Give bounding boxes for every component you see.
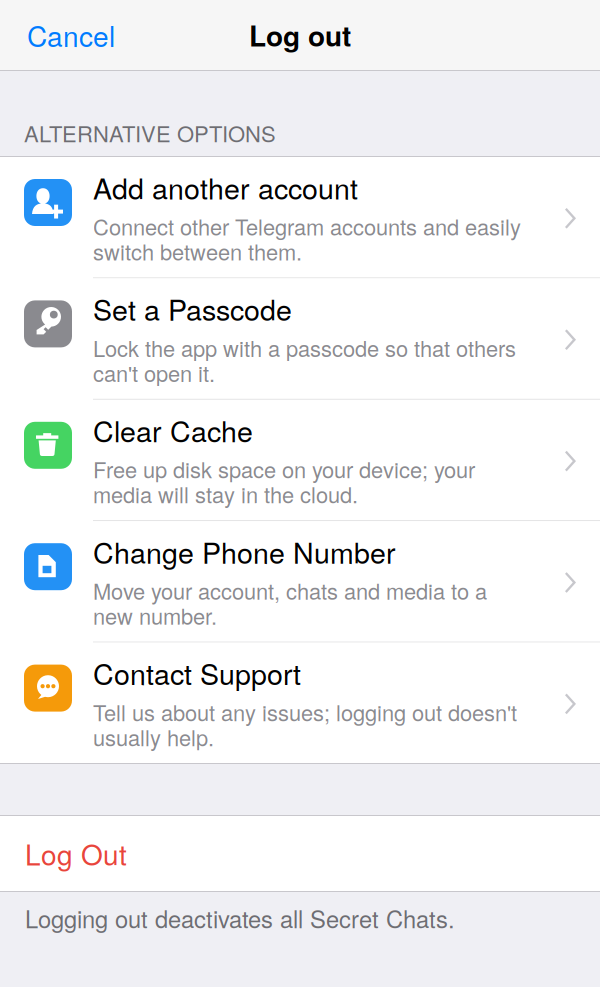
staticText: switch between them.	[93, 235, 302, 267]
staticText: ALTERNATIVE OPTIONS	[24, 117, 276, 148]
staticText: Add another account	[93, 167, 358, 208]
staticText: Connect other Telegram accounts and easi…	[93, 210, 521, 242]
staticText: usually help.	[93, 721, 214, 752]
staticText: Cancel	[27, 15, 115, 55]
button[interactable]: Log Out	[0, 816, 600, 891]
staticText: Logging out deactivates all Secret Chats…	[25, 901, 455, 935]
button[interactable]: Add another account	[0, 157, 600, 278]
staticText: Free up disk space on your device; your	[93, 453, 475, 484]
button[interactable]: Change Phone Number	[0, 521, 600, 643]
staticText: Move your account, chats and media to a	[93, 575, 487, 606]
staticText: Change Phone Number	[93, 531, 396, 572]
staticText: new number.	[93, 600, 217, 631]
button[interactable]: Cancel	[0, 0, 187, 70]
staticText: Lock the app with a passcode so that oth…	[93, 332, 516, 363]
button[interactable]: Contact Support	[0, 643, 600, 764]
staticText: can't open it.	[93, 357, 215, 388]
staticText: Contact Support	[93, 652, 301, 693]
button[interactable]: Clear Cache	[0, 400, 600, 521]
staticText: Log out	[249, 15, 351, 55]
staticText: Log Out	[25, 833, 127, 874]
staticText: Clear Cache	[93, 409, 253, 450]
button[interactable]: Set a Passcode	[0, 278, 600, 400]
staticText: Tell us about any issues; logging out do…	[93, 696, 517, 727]
staticText: media will stay in the cloud.	[93, 478, 358, 509]
staticText: Set a Passcode	[93, 288, 292, 329]
